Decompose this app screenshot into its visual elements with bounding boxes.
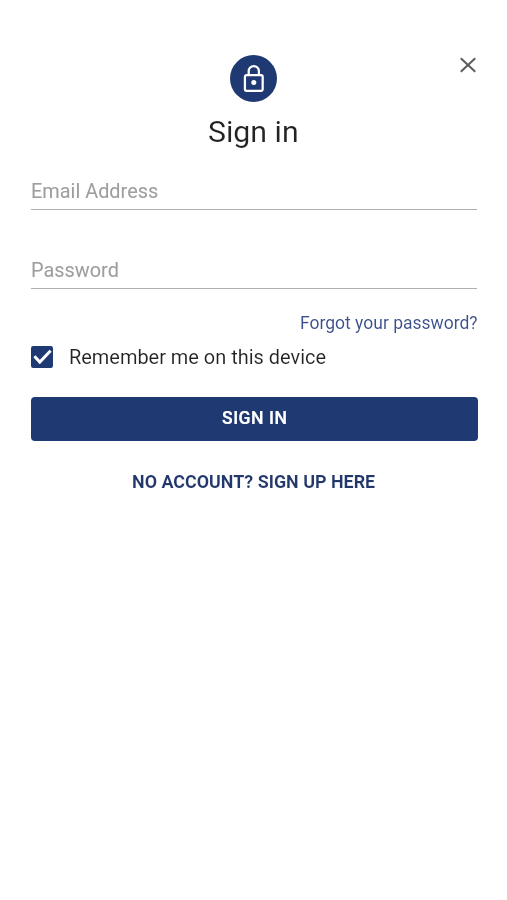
staticText: Email Address: [31, 180, 159, 203]
button[interactable]: [31, 249, 477, 290]
staticText: Sign in: [208, 114, 299, 150]
staticText: SIGN IN: [222, 408, 288, 429]
button[interactable]: Forgot your password?: [300, 307, 478, 338]
button[interactable]: [31, 170, 477, 211]
button[interactable]: Close: [444, 41, 491, 88]
other: Secure sign in: [230, 55, 277, 102]
button[interactable]: Remember me on this device: [31, 340, 507, 373]
button[interactable]: NO ACCOUNT? SIGN UP HERE: [122, 465, 386, 498]
button[interactable]: SIGN IN: [31, 397, 478, 441]
staticText: Password: [31, 259, 119, 282]
staticText: Remember me on this device: [69, 345, 326, 368]
staticText: Forgot your password?: [300, 313, 478, 334]
staticText: NO ACCOUNT? SIGN UP HERE: [132, 471, 376, 492]
